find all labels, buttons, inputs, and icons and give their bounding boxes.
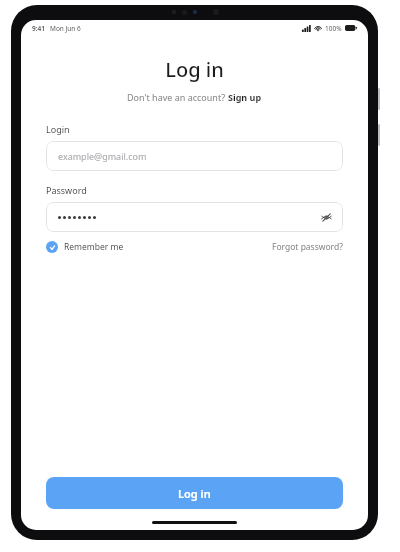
staticText: example@gmail.com <box>58 150 147 162</box>
staticText: 100% <box>325 24 342 33</box>
button[interactable]: Show password <box>46 202 343 232</box>
staticText: Password <box>46 184 87 196</box>
button[interactable]: Remember me <box>46 241 124 253</box>
staticText: Login <box>46 123 70 135</box>
staticText: Don't have an account? <box>127 91 228 103</box>
staticText: Remember me <box>64 241 124 253</box>
button[interactable]: Forgot password? <box>272 241 343 253</box>
staticText: Log in <box>21 56 368 83</box>
button[interactable]: Sign up <box>228 91 262 103</box>
staticText: Mon Jun 6 <box>50 24 81 33</box>
staticText: Log in <box>178 486 211 501</box>
button[interactable]: Show password <box>317 208 335 226</box>
button[interactable]: example@gmail.com <box>46 141 343 171</box>
staticText: Sign up <box>228 91 262 103</box>
staticText: 9:41 <box>32 24 45 33</box>
staticText: Forgot password? <box>272 241 343 253</box>
button[interactable]: Log in <box>46 477 343 509</box>
